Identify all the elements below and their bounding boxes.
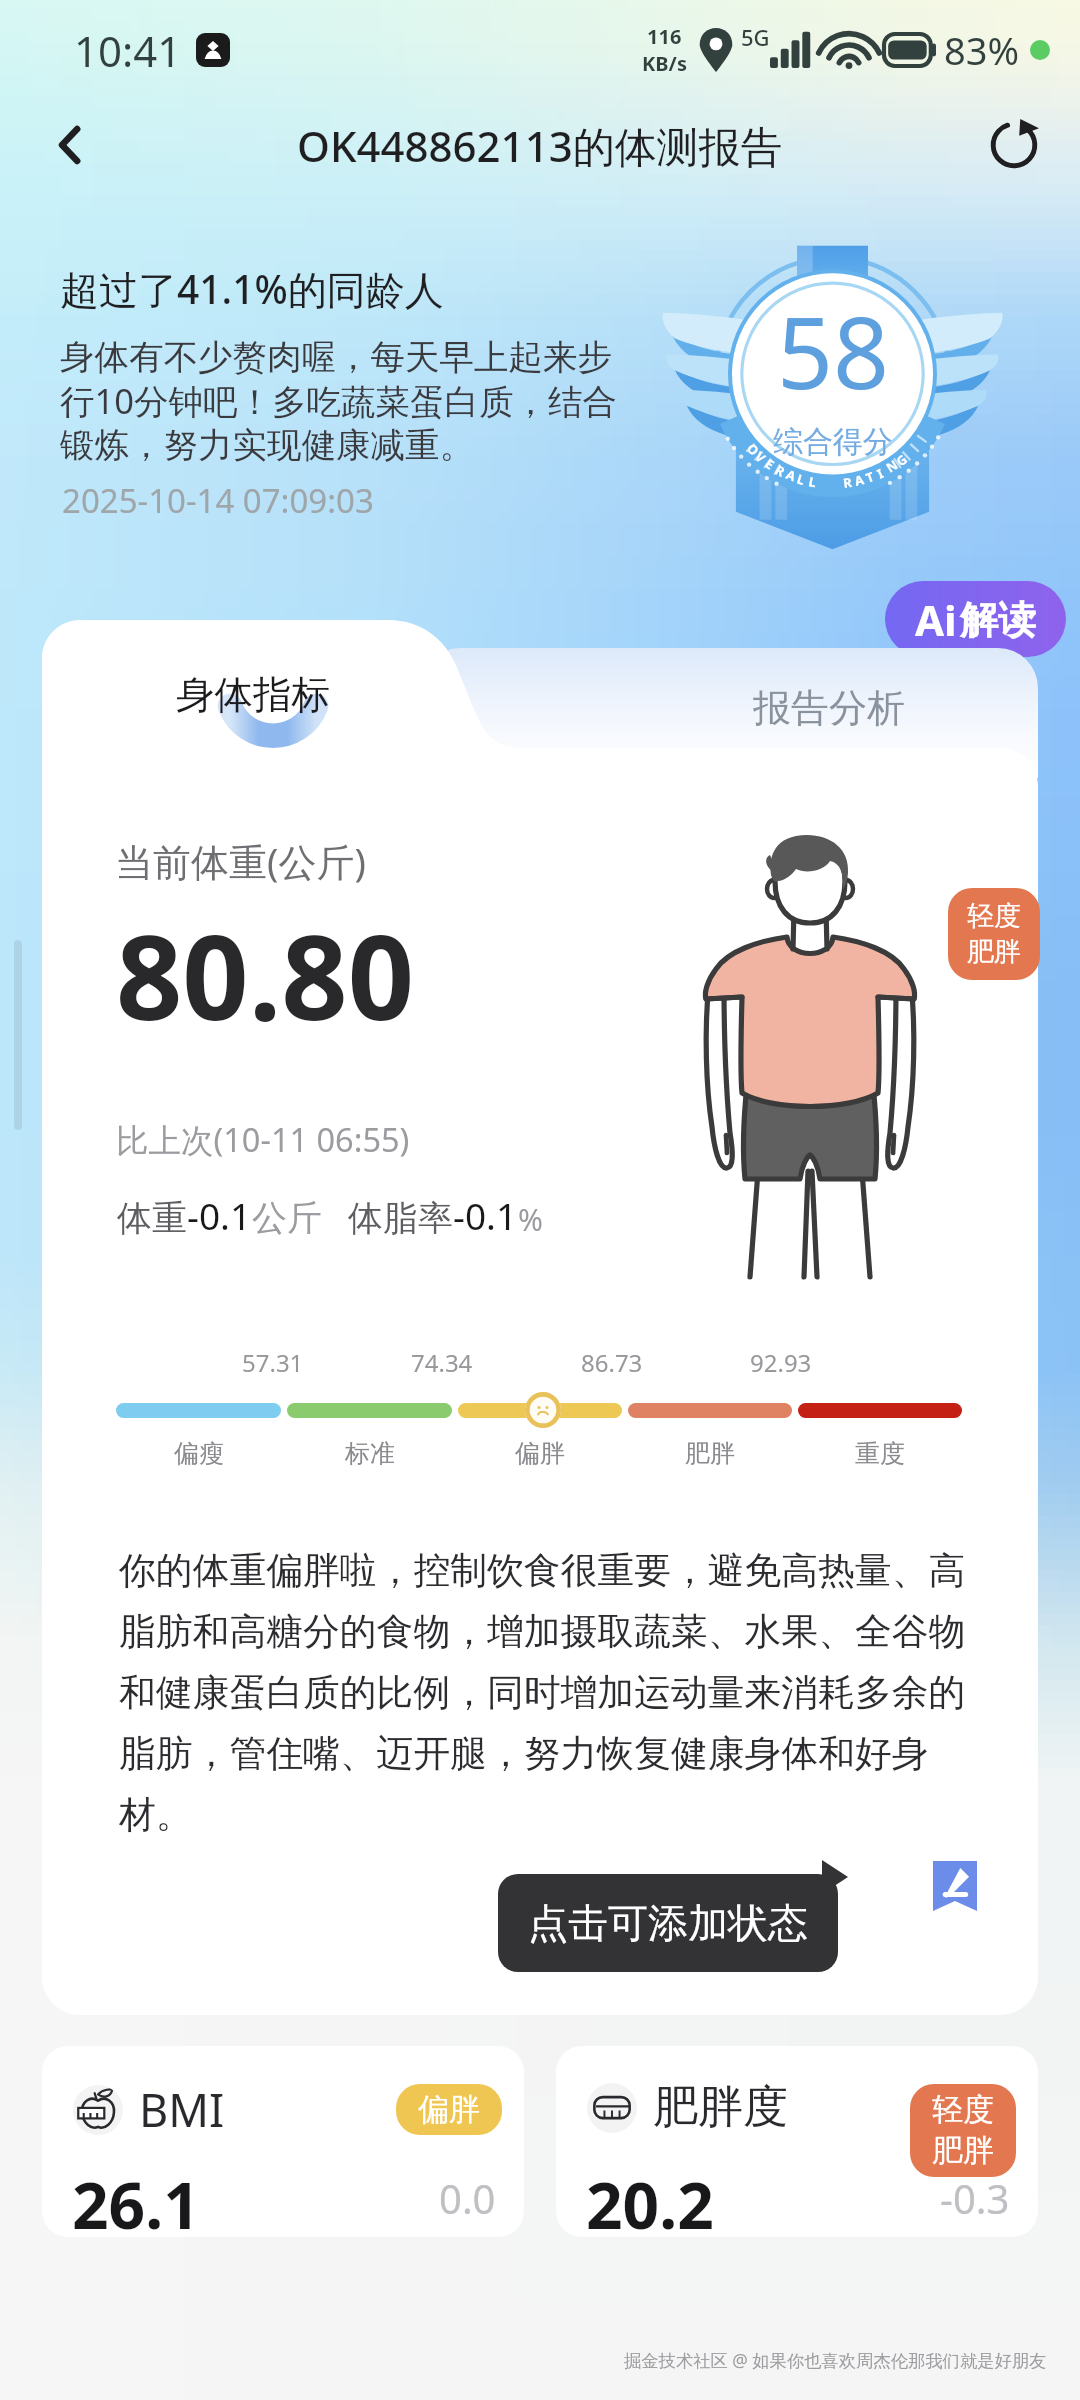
button[interactable]: 身体指标 (150, 644, 374, 760)
staticText: 10:41 (74, 22, 182, 79)
staticText: Ai (915, 591, 957, 648)
staticText: 偏胖 (515, 1438, 565, 1469)
staticText: 比上次(10-11 06:55) (116, 1117, 410, 1161)
staticText: 点击可添加状态 (528, 1898, 808, 1948)
staticText: -0.1 (453, 1190, 518, 1240)
button[interactable]: BMI (42, 2046, 524, 2237)
staticText: 58 (777, 284, 890, 417)
staticText: 身体有不少赘肉喔，每天早上起来步 行10分钟吧！多吃蔬菜蛋白质，结合 锻炼，努力… (60, 336, 617, 468)
staticText: 轻度 肥胖 (932, 2090, 994, 2171)
staticText: 80.80 (116, 896, 415, 1054)
staticText: 肥胖度 (653, 2079, 788, 2136)
staticText: 5G (741, 22, 770, 52)
staticText: 0.0 (439, 2171, 496, 2225)
staticText: 26.1 (72, 2161, 200, 2237)
staticText: 解读 (960, 596, 1036, 644)
staticText: 116 (647, 23, 682, 50)
staticText: 83% (944, 24, 1020, 76)
staticText: 肥胖 (685, 1438, 735, 1469)
staticText: 综合得分 (773, 423, 893, 461)
staticText: 身体指标 (176, 671, 330, 720)
staticText: 74.34 (411, 1346, 473, 1379)
staticText: 86.73 (581, 1346, 643, 1379)
button[interactable]: Edit note (928, 1859, 982, 1913)
staticText: % (518, 1199, 543, 1240)
staticText: 报告分析 (753, 684, 905, 732)
staticText: -0.3 (940, 2171, 1010, 2225)
staticText: OK448862113的体测报告 (297, 117, 783, 174)
staticText: 57.31 (242, 1346, 304, 1379)
staticText: 当前体重(公斤) (115, 835, 366, 887)
staticText: 超过了41.1%的同龄人 (60, 262, 444, 315)
staticText: 偏瘦 (174, 1438, 224, 1469)
staticText: 公斤 (252, 1196, 322, 1240)
staticText: 标准 (345, 1438, 395, 1469)
button[interactable]: Back (34, 109, 106, 181)
button[interactable]: Refresh (978, 109, 1050, 181)
staticText: BMI (139, 2079, 225, 2140)
staticText: -0.1 (187, 1190, 252, 1240)
staticText: 重度 (855, 1438, 905, 1469)
staticText: KB/s (642, 50, 687, 77)
button[interactable]: Ai (885, 581, 1066, 657)
staticText: 你的体重偏胖啦，控制饮食很重要，避免高热量、高 脂肪和高糖分的食物，增加摄取蔬菜… (119, 1548, 966, 1838)
staticText: 2025-10-14 07:09:03 (62, 478, 374, 523)
button[interactable]: 点击可添加状态 (498, 1874, 838, 1972)
staticText: 偏胖 (418, 2090, 480, 2129)
staticText: 92.93 (750, 1346, 812, 1379)
staticText: 20.2 (586, 2161, 714, 2237)
staticText: 轻度 肥胖 (967, 899, 1021, 969)
staticText: 掘金技术社区 @ 如果你也喜欢周杰伦那我们就是好朋友 (624, 2349, 1047, 2373)
button[interactable]: 报告分析 (420, 648, 1038, 778)
staticText: 体重 (117, 1196, 187, 1240)
staticText: 体脂率 (348, 1196, 453, 1240)
button[interactable]: 肥胖度 (556, 2046, 1038, 2237)
